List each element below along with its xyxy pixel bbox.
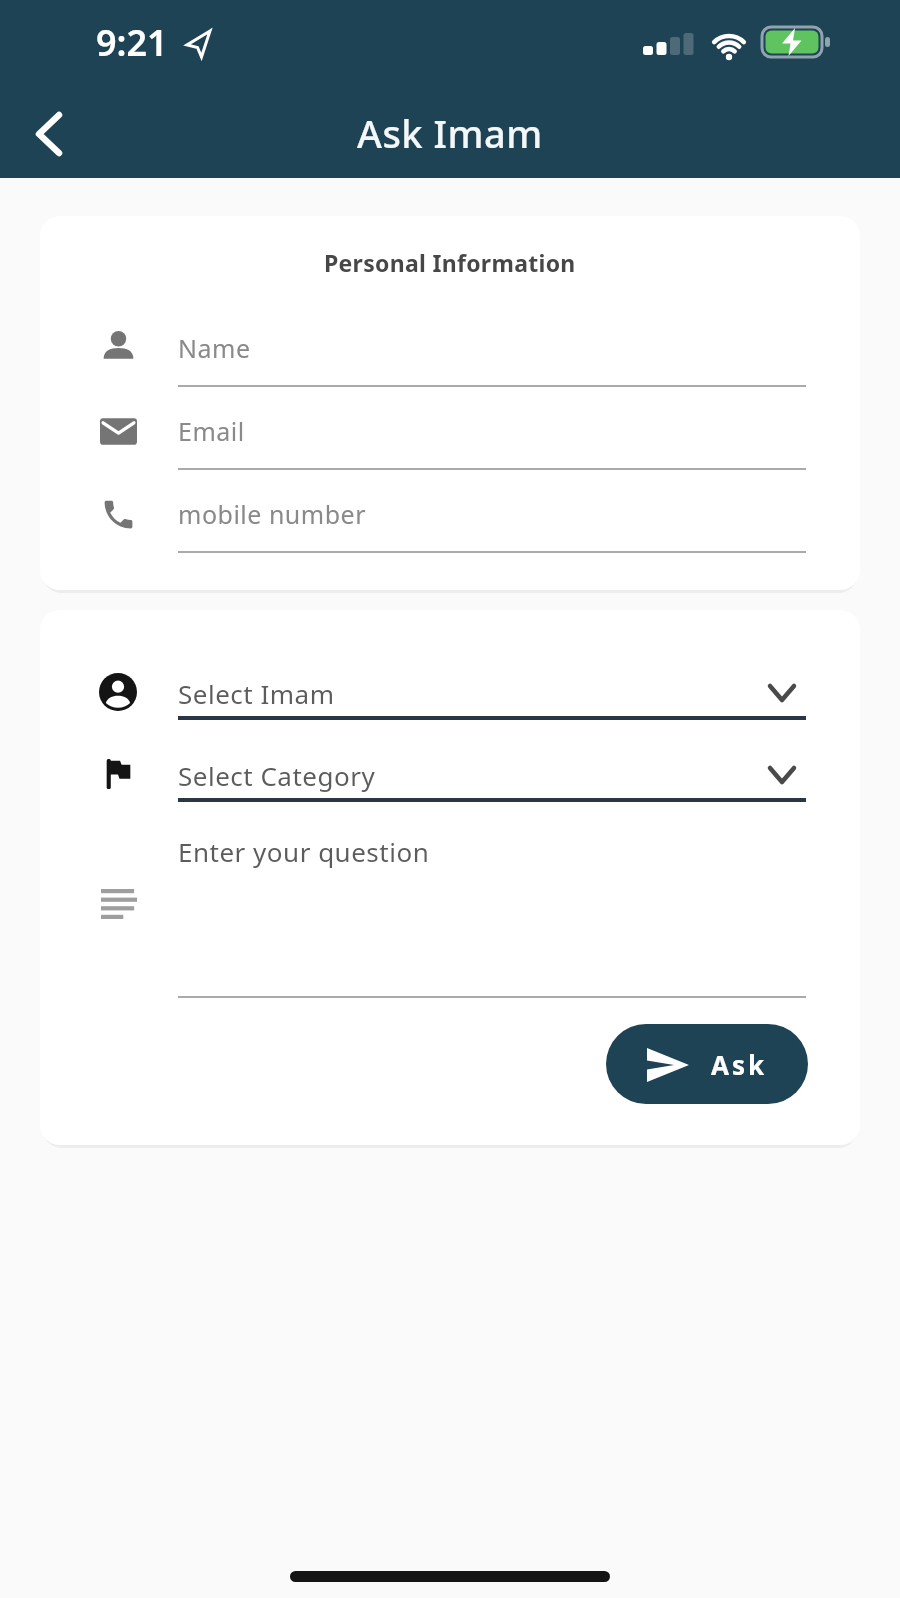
button[interactable]: mobile number	[178, 494, 806, 534]
staticText: mobile number	[178, 497, 366, 531]
button[interactable]	[18, 103, 80, 165]
button[interactable]: Select Category	[178, 755, 806, 795]
staticText: Name	[178, 331, 251, 365]
button[interactable]: Ask	[606, 1024, 808, 1104]
button[interactable]: Name	[178, 328, 806, 368]
staticText: Personal Information	[324, 247, 576, 278]
staticText: Select Category	[178, 758, 376, 793]
staticText: Enter your question	[178, 834, 430, 869]
button[interactable]: Select Imam	[178, 673, 806, 713]
button[interactable]	[178, 831, 806, 997]
staticText: 9:21	[96, 18, 168, 66]
button[interactable]: Email	[178, 411, 806, 451]
staticText: Ask	[711, 1047, 768, 1082]
staticText: Ask Imam	[357, 107, 543, 159]
staticText: Email	[178, 414, 245, 448]
staticText: Select Imam	[178, 676, 335, 711]
